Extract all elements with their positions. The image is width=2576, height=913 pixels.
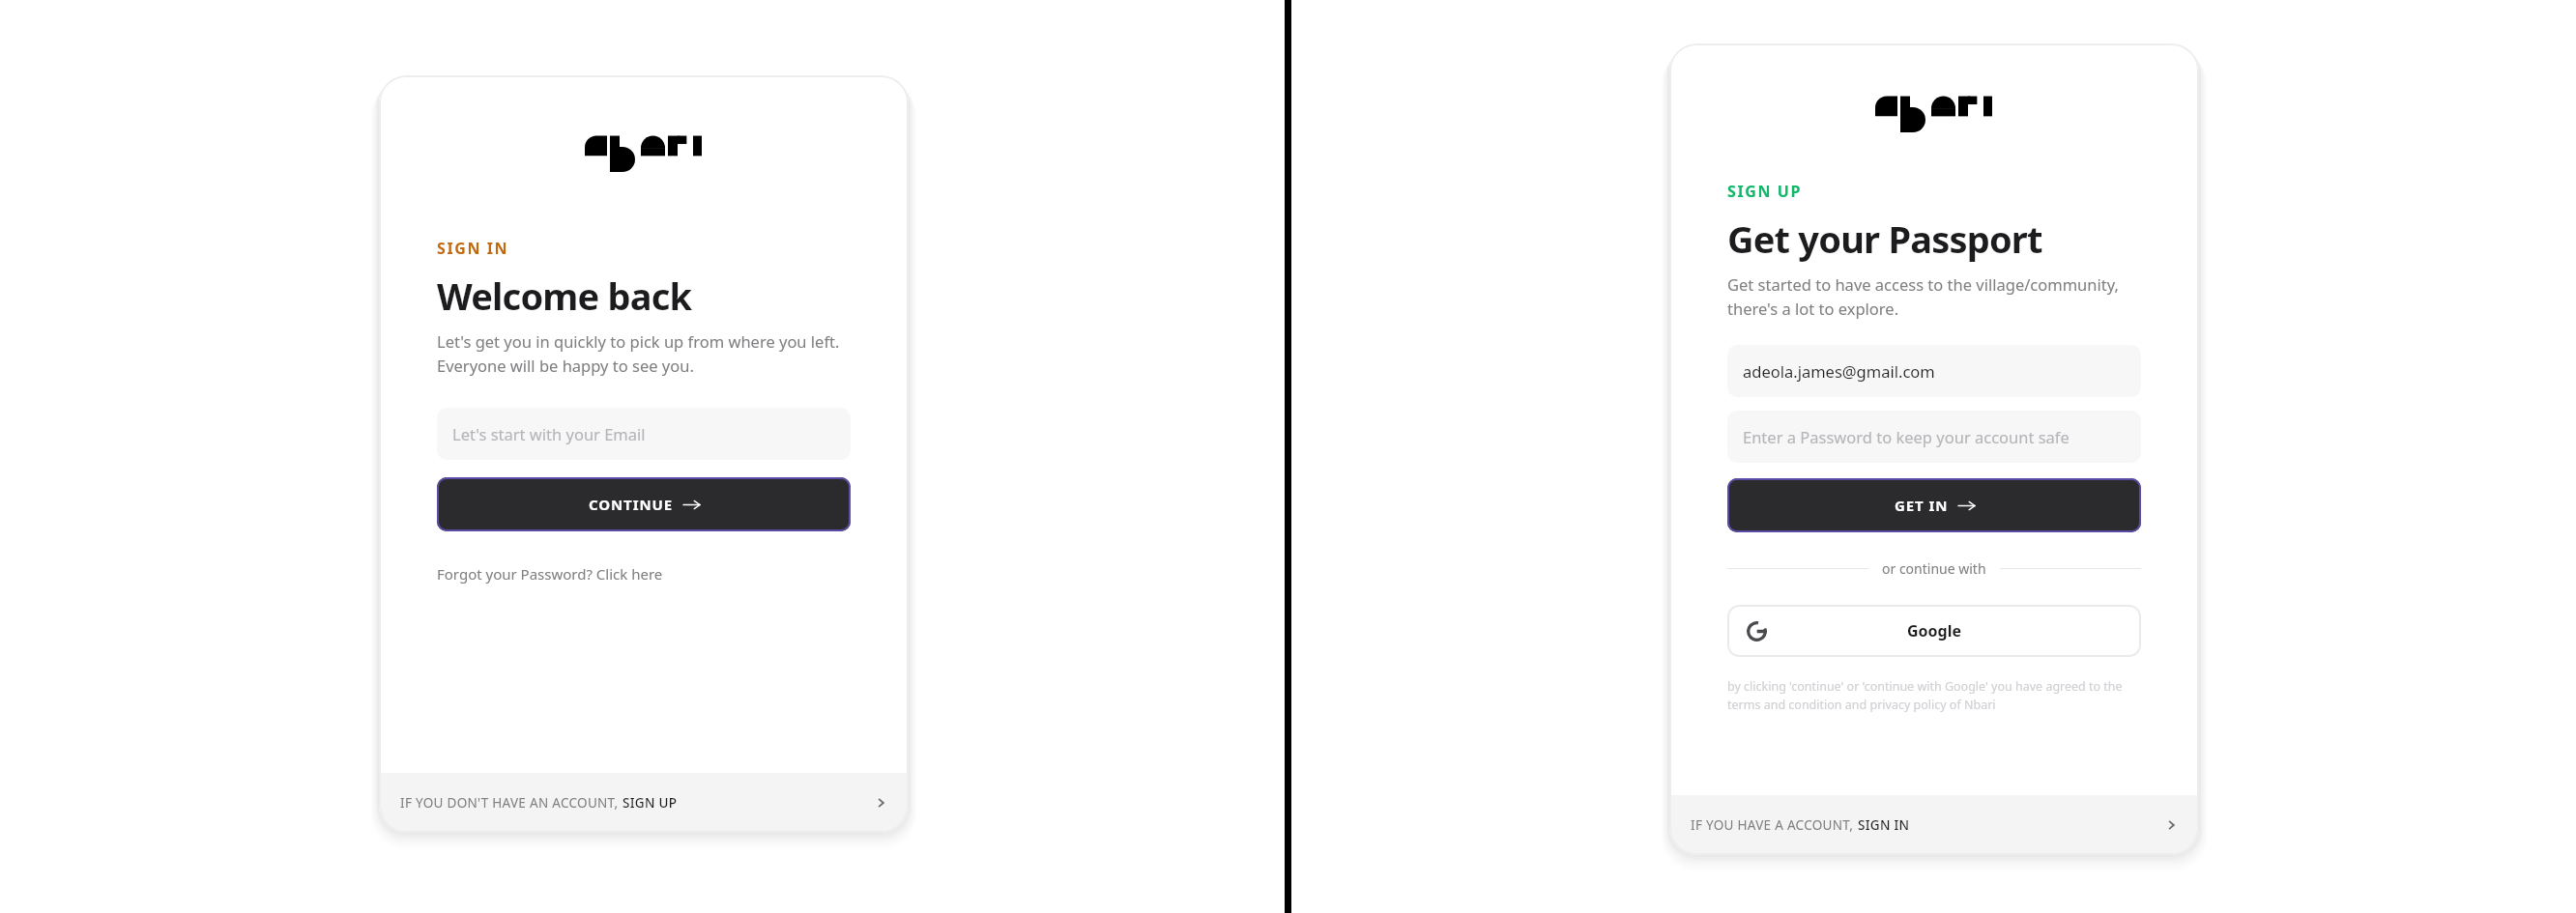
other: SIGN IN [2164,818,2178,832]
staticText: Enter a Password to keep your account sa… [1743,426,2069,447]
button[interactable]: Let's start with your Email [437,408,851,460]
button[interactable]: IF YOU HAVE A ACCOUNT, [1669,795,2199,855]
other: nbari [1875,82,1993,132]
staticText: or continue with [1882,559,1986,578]
staticText: CONTINUE [589,495,674,514]
button[interactable]: GET IN [1727,478,2141,532]
staticText: Get started to have access to the villag… [1727,273,2141,320]
staticText: SIGN UP [622,794,678,812]
staticText: GET IN [1895,496,1949,515]
staticText: adeola.james@gmail.com [1743,360,1935,382]
button[interactable]: CONTINUE [437,477,851,531]
staticText: SIGN IN [437,238,509,259]
staticText: Forgot your Password? Click here [437,564,663,584]
staticText: SIGN UP [1727,181,1803,202]
other: nbari [585,122,703,172]
button[interactable]: IF YOU DON'T HAVE AN ACCOUNT, [379,773,909,833]
button[interactable]: Forgot your Password? Click here [437,560,663,587]
staticText: Let's start with your Email [452,423,646,444]
staticText: Google [1907,620,1962,642]
staticText: Get your Passport [1727,214,2042,264]
staticText: IF YOU HAVE A ACCOUNT, [1691,816,1858,834]
staticText: IF YOU DON'T HAVE AN ACCOUNT, [400,794,622,812]
button[interactable]: Enter a Password to keep your account sa… [1727,411,2141,463]
staticText: SIGN IN [1858,816,1910,834]
staticText: Let's get you in quickly to pick up from… [437,330,851,377]
staticText: Welcome back [437,271,692,321]
button[interactable]: Google [1727,605,2141,657]
button[interactable]: adeola.james@gmail.com [1727,345,2141,397]
staticText: by clicking 'continue' or 'continue with… [1727,678,2141,713]
other: SIGN UP [874,796,887,810]
